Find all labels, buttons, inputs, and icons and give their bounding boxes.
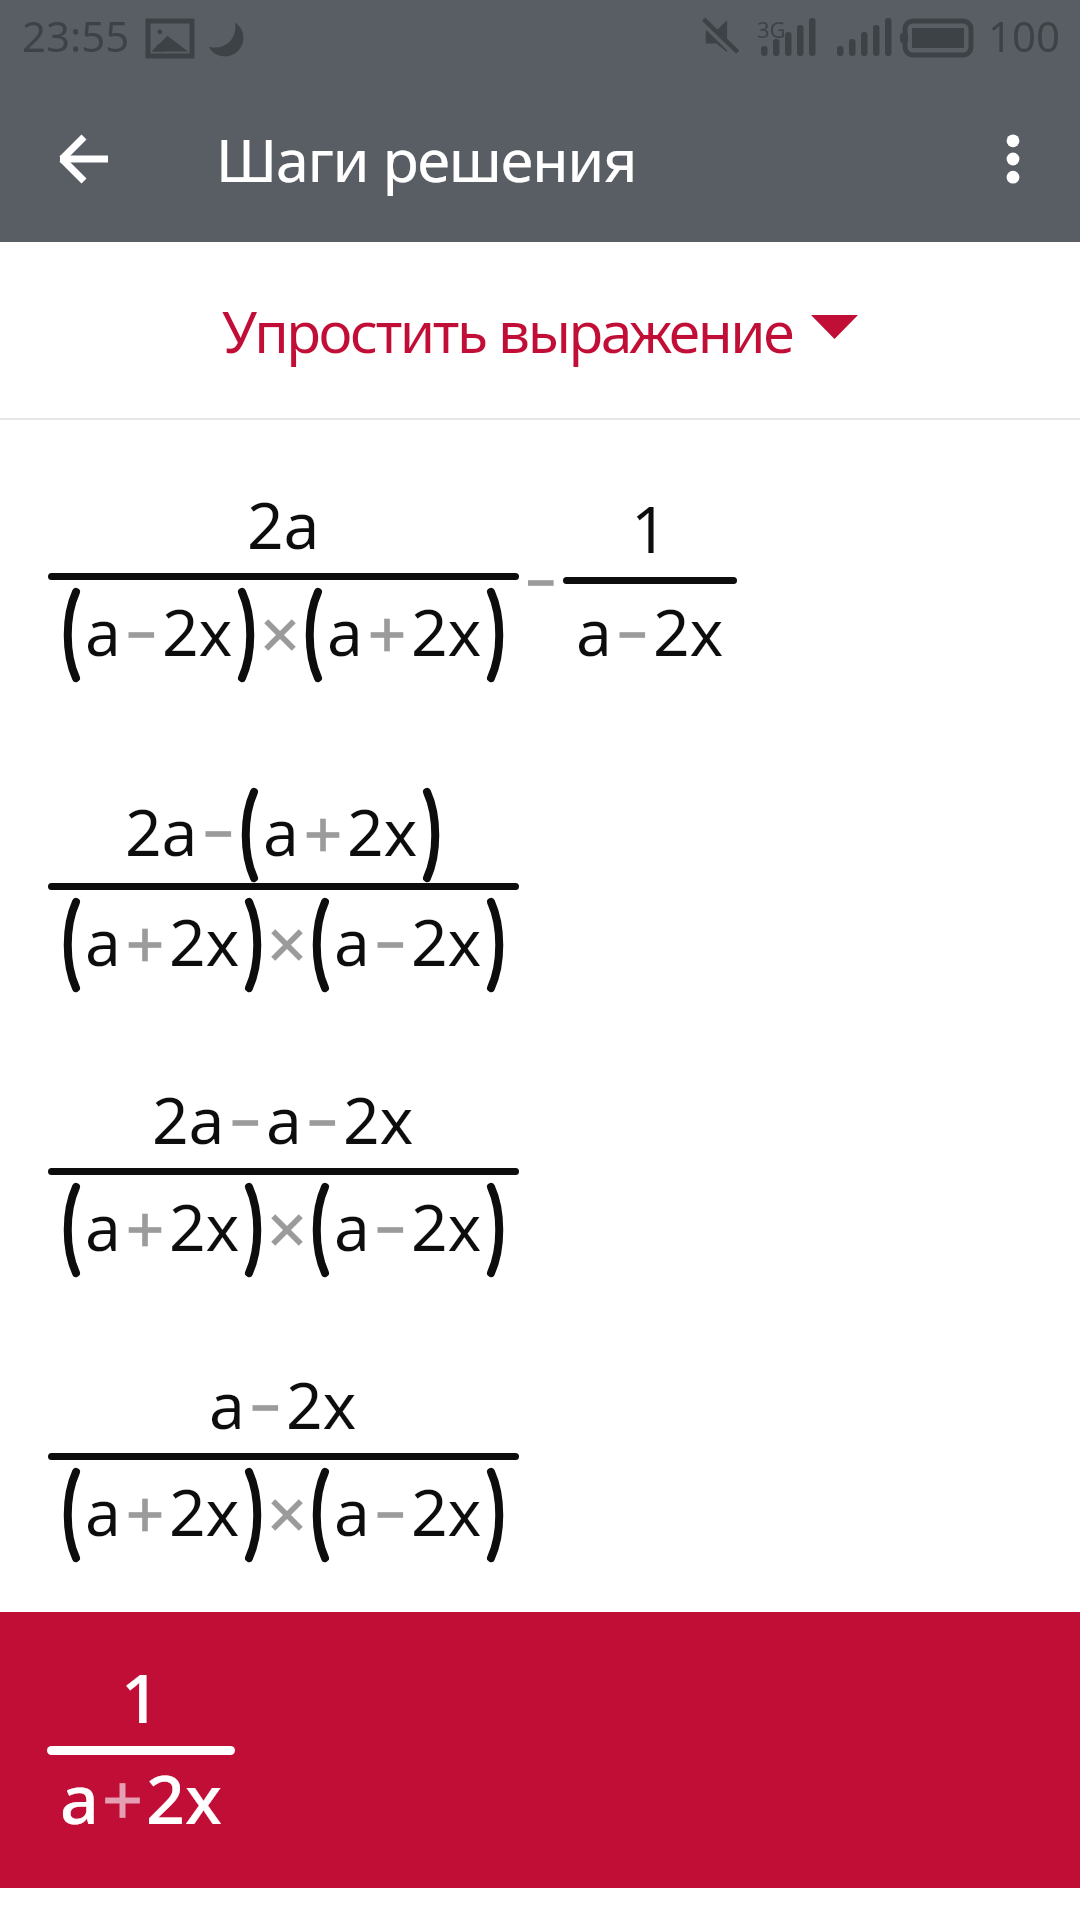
staticText: a <box>209 1361 245 1448</box>
staticText: Упростить выражение <box>222 292 793 370</box>
staticText: a <box>85 588 121 675</box>
staticText: 2x <box>411 1183 482 1270</box>
staticText: a <box>263 788 299 875</box>
staticText: a <box>85 1468 121 1555</box>
staticText: 2x <box>347 788 418 875</box>
staticText: 2x <box>411 588 482 675</box>
staticText: 3G <box>757 14 786 44</box>
staticText: a <box>85 898 121 985</box>
staticText: Шаги решения <box>216 119 637 199</box>
staticText: a <box>576 588 612 675</box>
staticText: a <box>85 1183 121 1270</box>
staticText: a <box>327 588 363 675</box>
staticText: 100 <box>988 7 1061 64</box>
staticText: 23:55 <box>22 7 130 64</box>
staticText: a <box>334 1468 370 1555</box>
staticText: 2x <box>162 588 233 675</box>
staticText: a <box>334 898 370 985</box>
staticText: 2a <box>247 481 320 568</box>
staticText: 2a <box>125 788 198 875</box>
staticText: a <box>60 1751 99 1844</box>
staticText: a <box>334 1183 370 1270</box>
staticText: 2a <box>152 1076 225 1163</box>
button[interactable]: More options <box>976 122 1050 196</box>
staticText: 2x <box>169 898 240 985</box>
button[interactable]: Упростить выражение <box>222 292 858 370</box>
staticText: a <box>266 1076 302 1163</box>
staticText: 2x <box>169 1183 240 1270</box>
staticText: 2x <box>146 1751 222 1844</box>
staticText: 2x <box>286 1361 357 1448</box>
staticText: 2x <box>411 898 482 985</box>
staticText: 2x <box>653 588 724 675</box>
button[interactable]: Back <box>44 119 124 199</box>
staticText: 2x <box>411 1468 482 1555</box>
staticText: 2x <box>343 1076 414 1163</box>
staticText: 1 <box>631 485 668 572</box>
staticText: 2x <box>169 1468 240 1555</box>
staticText: 1 <box>121 1650 160 1743</box>
